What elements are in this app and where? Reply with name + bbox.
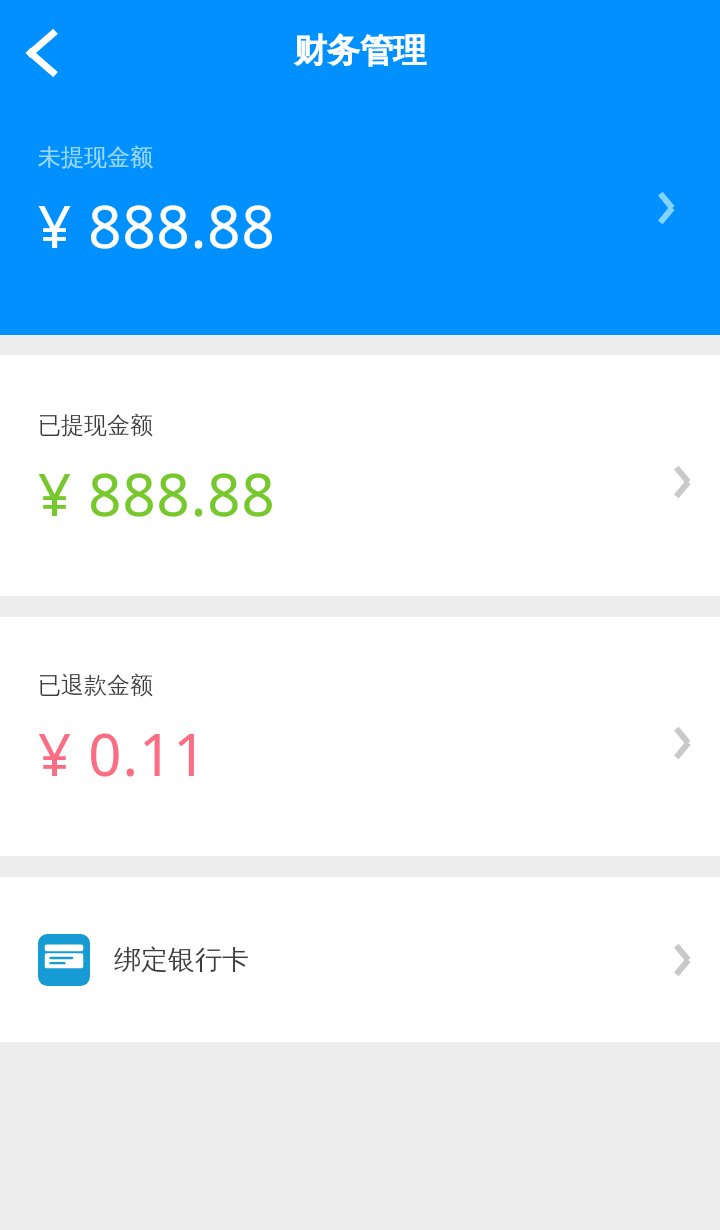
button[interactable]: Back [14, 23, 70, 83]
button[interactable]: 未提现金额 [0, 105, 720, 335]
staticText: 已退款金额 [38, 671, 153, 700]
staticText: 绑定银行卡 [114, 943, 249, 977]
button[interactable]: 已退款金额 [0, 617, 720, 856]
staticText: ¥ 888.88 [38, 186, 276, 265]
staticText: ¥ 888.88 [38, 454, 276, 533]
staticText: 财务管理 [294, 30, 426, 72]
staticText: ¥ 0.11 [38, 714, 208, 793]
button[interactable]: 已提现金额 [0, 355, 720, 596]
staticText: 未提现金额 [38, 143, 153, 172]
button[interactable]: 绑定银行卡 [0, 877, 720, 1042]
staticText: 已提现金额 [38, 411, 153, 440]
